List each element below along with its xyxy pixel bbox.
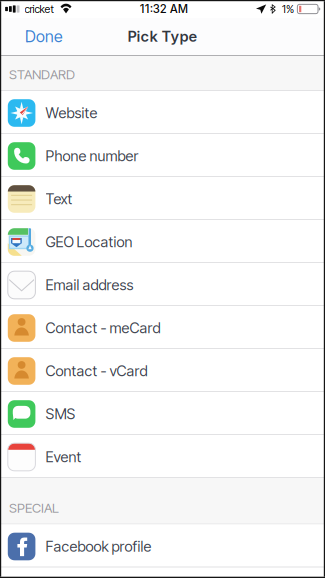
- staticText: Text: [45, 190, 72, 208]
- button[interactable]: GEO Location: [0, 220, 325, 263]
- button[interactable]: Event: [0, 435, 325, 478]
- staticText: SMS: [45, 405, 75, 423]
- staticText: 1%: [282, 2, 294, 15]
- staticText: Done: [25, 27, 63, 46]
- staticText: SPECIAL: [9, 500, 59, 516]
- staticText: 11:32 AM: [140, 2, 188, 16]
- staticText: Phone number: [45, 147, 138, 165]
- staticText: GEO Location: [45, 233, 132, 251]
- button[interactable]: Done: [0, 18, 79, 55]
- button[interactable]: Text: [0, 177, 325, 220]
- staticText: cricket: [24, 2, 53, 15]
- staticText: Email address: [45, 276, 133, 294]
- button[interactable]: Phone number: [0, 134, 325, 177]
- button[interactable]: Contact - meCard: [0, 306, 325, 349]
- staticText: STANDARD: [9, 66, 75, 82]
- staticText: Event: [45, 448, 81, 466]
- button[interactable]: Email address: [0, 263, 325, 306]
- button[interactable]: Contact - vCard: [0, 349, 325, 392]
- staticText: Website: [45, 104, 97, 122]
- button[interactable]: SMS: [0, 392, 325, 435]
- button[interactable]: Facebook profile: [0, 524, 325, 567]
- staticText: Pick Type: [127, 28, 197, 45]
- staticText: Facebook profile: [45, 538, 151, 555]
- staticText: Contact - meCard: [45, 319, 160, 337]
- button[interactable]: Website: [0, 91, 325, 134]
- staticText: Contact - vCard: [45, 362, 147, 380]
